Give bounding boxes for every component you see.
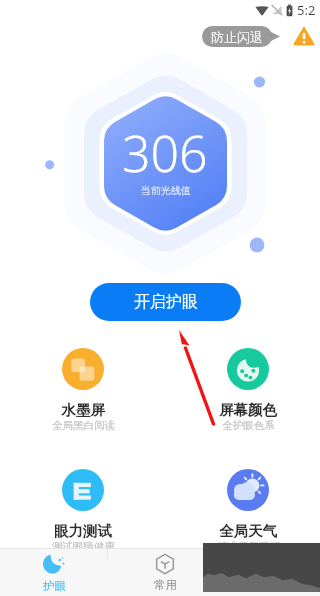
button[interactable]: 全局天气 (188, 469, 308, 553)
staticText: 防止闪退 (211, 29, 263, 45)
staticText: 全局黑白阅读 (52, 419, 115, 432)
staticText: 306 (122, 119, 208, 187)
staticText: 水墨屏 (61, 401, 105, 419)
staticText: 眼力测试 (54, 522, 112, 540)
button[interactable]: Warning (293, 25, 315, 47)
staticText: 当前光线值 (141, 184, 191, 197)
button[interactable]: 屏幕颜色 (188, 348, 308, 432)
staticText: 全局天气 (219, 522, 277, 540)
button[interactable]: 常用 (119, 549, 211, 596)
staticText: 我的 (270, 579, 293, 593)
button[interactable]: 我的 (235, 549, 320, 596)
button[interactable]: 眼力测试 (23, 469, 143, 553)
button[interactable]: 水墨屏 (23, 348, 143, 432)
staticText: 屏幕颜色 (219, 401, 277, 419)
staticText: 开启护眼 (134, 292, 198, 312)
staticText: 常用 (154, 578, 177, 592)
button[interactable]: 防止闪退 (202, 26, 280, 47)
staticText: 5:2 (297, 1, 316, 19)
staticText: 精准天气预报 (217, 540, 280, 553)
button[interactable]: 护眼 (8, 549, 100, 596)
staticText: 测试眼睛健康 (52, 540, 115, 553)
staticText: 全护眼色系 (222, 419, 275, 432)
staticText: 护眼 (43, 579, 66, 593)
button[interactable]: 开启护眼 (90, 283, 241, 321)
